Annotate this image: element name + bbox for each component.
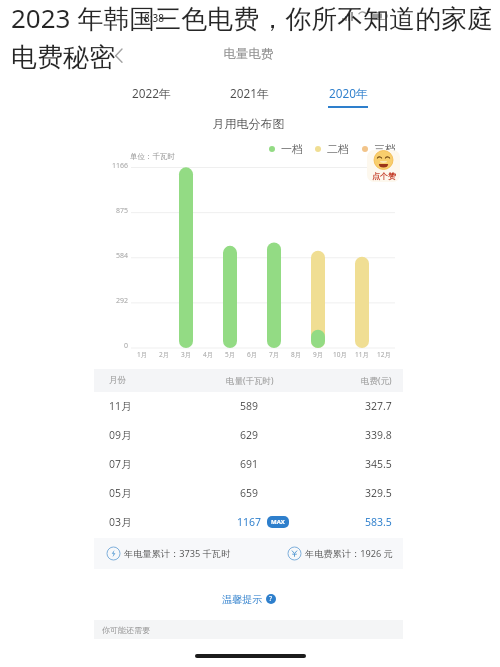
staticText: 3月 [181,350,192,359]
staticText: 6月 [247,350,258,359]
button[interactable]: 2021年 [219,85,279,111]
staticText: 2022年 [132,85,171,101]
staticText: 584 [96,251,128,261]
staticText: 月份 [109,375,126,386]
staticText: 点个赞 [372,171,396,181]
staticText: 2月 [159,350,170,359]
staticText: 2023 年韩国三色电费，你所不知道的家庭 [11,0,494,36]
staticText: 9月 [313,350,324,359]
button[interactable]: 11月 [94,392,403,420]
button[interactable]: 温馨提示 [94,591,403,607]
staticText: 10月 [333,350,347,359]
staticText: 5月 [225,350,236,359]
staticText: 05月 [109,486,132,500]
button[interactable]: 09月 [94,420,403,449]
staticText: 电费(元) [361,375,392,387]
staticText: 年电费累计：1926 元 [305,547,393,560]
staticText: MAX [271,518,285,526]
staticText: 1167 [237,515,262,529]
staticText: 年电量累计：3735 千瓦时 [124,547,231,560]
staticText: 629 [240,428,259,442]
staticText: 一档 [281,142,303,155]
staticText: ? [269,594,273,604]
staticText: 11月 [109,399,132,413]
staticText: 电费秘密 [11,41,115,74]
staticText: 2021年 [230,85,269,101]
staticText: 2020年 [329,85,368,101]
button[interactable]: 05月 [94,478,403,507]
staticText: 8:38 [144,11,164,25]
staticText: 单位：千瓦时 [130,152,175,161]
staticText: 691 [240,457,259,471]
staticText: 589 [240,399,259,413]
staticText: 1月 [137,350,148,359]
staticText: 三档 [374,142,396,155]
staticText: 月用电分布图 [94,116,403,131]
staticText: 电量(千瓦时) [226,375,274,387]
button[interactable]: 2020年 [318,85,378,111]
staticText: 温馨提示 [222,593,262,606]
staticText: 你可能还需要 [102,625,150,635]
button[interactable]: Back [102,43,128,68]
staticText: 电量电费 [94,46,403,62]
button[interactable]: 2022年 [121,85,181,111]
staticText: 4月 [203,350,214,359]
staticText: 339.8 [365,428,392,442]
staticText: 292 [96,296,128,306]
staticText: 327.7 [365,399,392,413]
staticText: 二档 [327,142,349,155]
staticText: 03月 [109,515,132,529]
button[interactable]: 07月 [94,449,403,478]
staticText: 659 [240,486,259,500]
staticText: 09月 [109,428,132,442]
staticText: 1166 [96,161,128,171]
staticText: 329.5 [365,486,392,500]
button[interactable]: 03月 [94,507,403,536]
staticText: 583.5 [365,515,392,529]
staticText: 12月 [377,350,391,359]
staticText: 875 [96,206,128,216]
staticText: 07月 [109,457,132,471]
staticText: 11月 [355,350,369,359]
staticText: 7月 [269,350,280,359]
staticText: 345.5 [365,457,392,471]
staticText: 8月 [291,350,302,359]
staticText: 0 [96,341,128,351]
